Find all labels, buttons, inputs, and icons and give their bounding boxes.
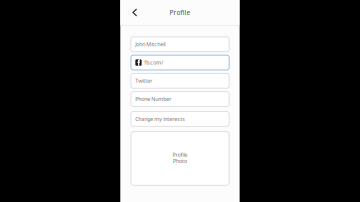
staticText: Twitter: [135, 77, 152, 84]
staticText: Photo: [173, 157, 187, 164]
staticText: Profile: [170, 8, 191, 17]
staticText: John Mitchell: [135, 41, 165, 48]
button[interactable]: Back: [120, 0, 149, 24]
button[interactable]: fb.com/: [131, 55, 229, 70]
button[interactable]: John Mitchell: [131, 37, 229, 52]
button[interactable]: Change my interests: [131, 112, 229, 126]
staticText: Phone Number: [135, 95, 171, 103]
staticText: Profile: [172, 151, 187, 158]
staticText: fb.com/: [144, 59, 163, 66]
button[interactable]: Profile: [131, 131, 229, 185]
button[interactable]: Phone Number: [131, 92, 229, 106]
button[interactable]: Twitter: [131, 73, 229, 88]
staticText: Change my interests: [135, 115, 185, 122]
